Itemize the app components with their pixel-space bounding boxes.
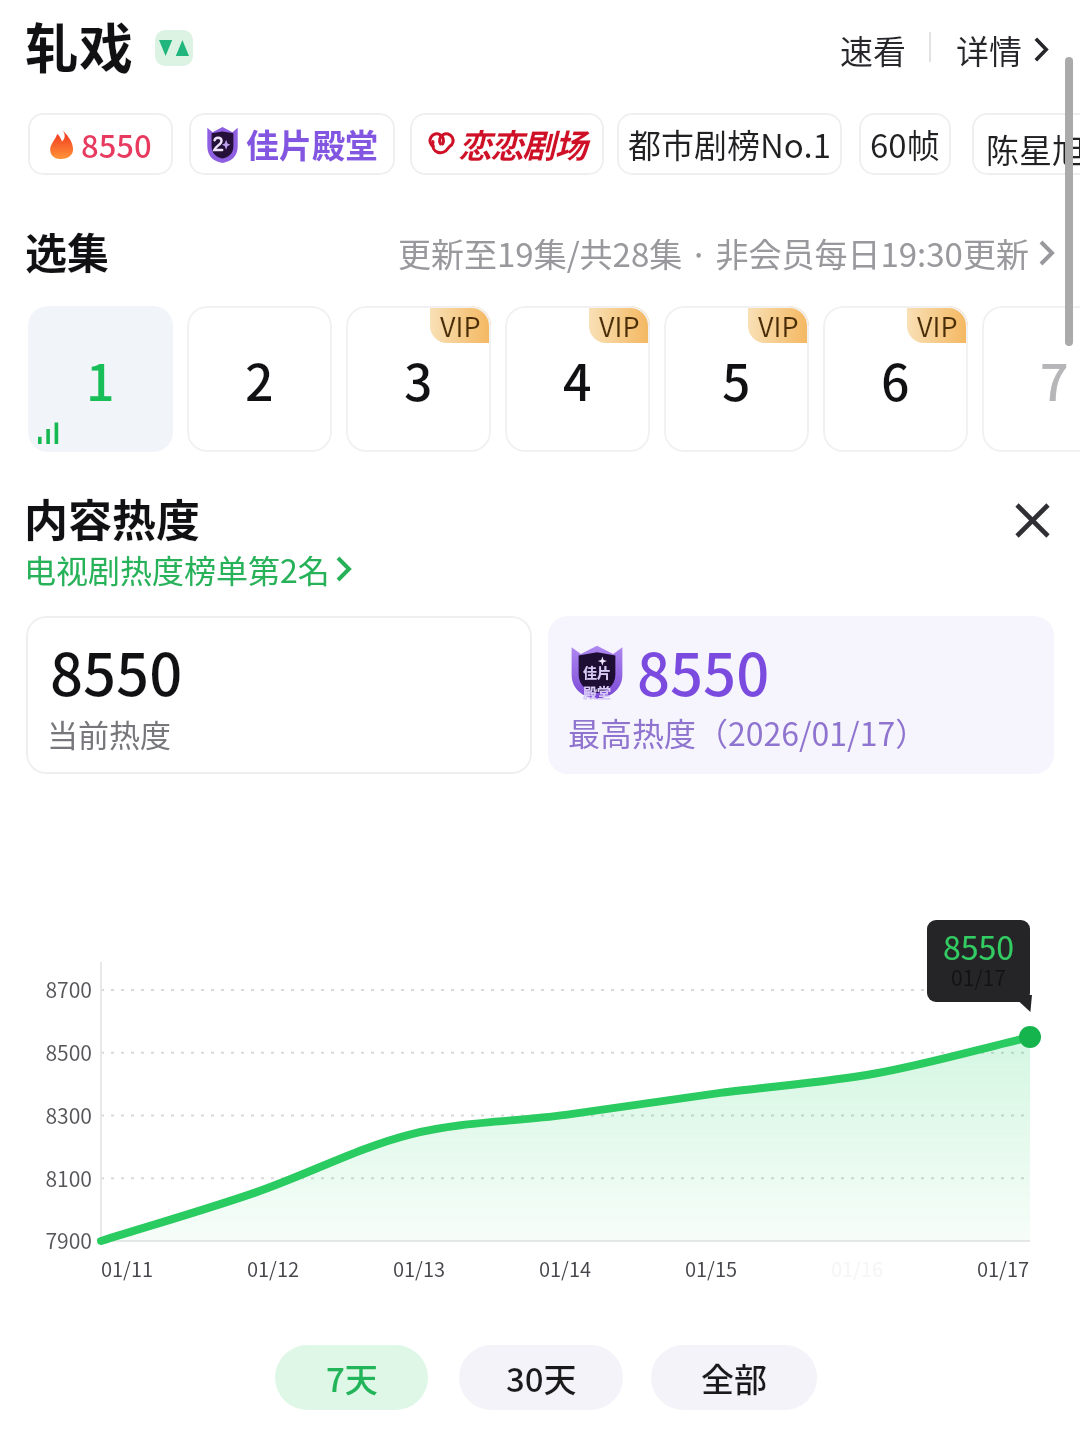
staticText: 7 [1040, 343, 1069, 415]
staticText: 30天 [506, 1354, 577, 1402]
staticText: 电视剧热度榜单第2名 [24, 546, 330, 592]
staticText: 6 [881, 343, 910, 415]
button[interactable]: Expand title [155, 30, 193, 66]
staticText: 全部 [701, 1354, 767, 1402]
staticText: 2 [245, 343, 274, 415]
staticText: 佳片 [583, 662, 611, 682]
button[interactable]: 30天 [459, 1345, 623, 1410]
staticText: 1 [86, 343, 115, 415]
staticText: 8500 [0, 1037, 92, 1067]
button[interactable]: 更新至19集/共28集 · 非会员每日19:30更新 [0, 229, 1054, 277]
staticText: 5 [722, 343, 751, 415]
staticText: 01/15 [651, 1254, 771, 1283]
button[interactable]: 速看 [824, 18, 916, 74]
button[interactable]: 7 [982, 306, 1080, 452]
staticText: 01/17 [927, 962, 1030, 992]
staticText: 8550 [637, 629, 770, 713]
staticText: 当前热度 [47, 711, 171, 756]
button[interactable]: 60帧 [859, 113, 951, 175]
button[interactable]: 恋恋剧场 [410, 113, 604, 175]
staticText: 8100 [0, 1163, 92, 1193]
staticText: 8550 [50, 629, 183, 713]
button[interactable]: 佳片殿堂 [189, 113, 395, 175]
staticText: 01/11 [67, 1254, 187, 1283]
button[interactable]: 3 [346, 306, 491, 452]
staticText: 01/14 [505, 1254, 625, 1283]
button[interactable]: 7天 [275, 1345, 428, 1410]
staticText: 殿堂 [583, 682, 611, 702]
staticText: 更新至19集/共28集 · 非会员每日19:30更新 [398, 229, 1029, 277]
button[interactable]: 1 [28, 306, 173, 452]
staticText: 佳片殿堂 [246, 120, 378, 168]
staticText: 3 [404, 343, 433, 415]
staticText: 8300 [0, 1100, 92, 1130]
button[interactable]: 6 [823, 306, 968, 452]
staticText: 7900 [0, 1225, 92, 1255]
staticText: VIP [917, 306, 958, 343]
staticText: 速看 [840, 26, 906, 74]
staticText: 选集 [25, 220, 110, 281]
button[interactable]: 佳片 [548, 616, 1054, 774]
staticText: 恋恋剧场 [459, 120, 587, 168]
button[interactable]: 2 [187, 306, 332, 452]
button[interactable]: 详情 [940, 18, 1058, 74]
staticText: VIP [599, 306, 640, 343]
staticText: 01/17 [943, 1254, 1063, 1283]
staticText: 8700 [0, 974, 92, 1004]
staticText: VIP [440, 306, 481, 343]
staticText: 01/12 [213, 1254, 333, 1283]
staticText: 都市剧榜No.1 [628, 120, 831, 168]
button[interactable]: 陈星旭 [972, 113, 1080, 175]
staticText: VIP [758, 306, 799, 343]
staticText: 轧戏 [25, 6, 133, 84]
staticText: 内容热度 [24, 486, 200, 550]
staticText: 陈星旭 [986, 125, 1080, 173]
staticText: 4 [563, 343, 592, 415]
staticText: 8550 [81, 122, 152, 167]
button[interactable]: 电视剧热度榜单第2名 [24, 546, 351, 592]
staticText: 最高热度（2026/01/17） [568, 709, 928, 755]
staticText: 01/13 [359, 1254, 479, 1283]
button[interactable]: 全部 [651, 1345, 817, 1410]
staticText: 8550 [927, 923, 1030, 969]
staticText: 详情 [956, 26, 1022, 74]
staticText: 7天 [326, 1354, 378, 1402]
button[interactable]: 8550 [26, 616, 532, 774]
button[interactable]: 5 [664, 306, 809, 452]
button[interactable]: Close [1002, 490, 1062, 550]
button[interactable]: 8550 [28, 113, 173, 175]
staticText: 60帧 [870, 120, 940, 168]
button[interactable]: 4 [505, 306, 650, 452]
button[interactable]: 都市剧榜No.1 [617, 113, 842, 175]
